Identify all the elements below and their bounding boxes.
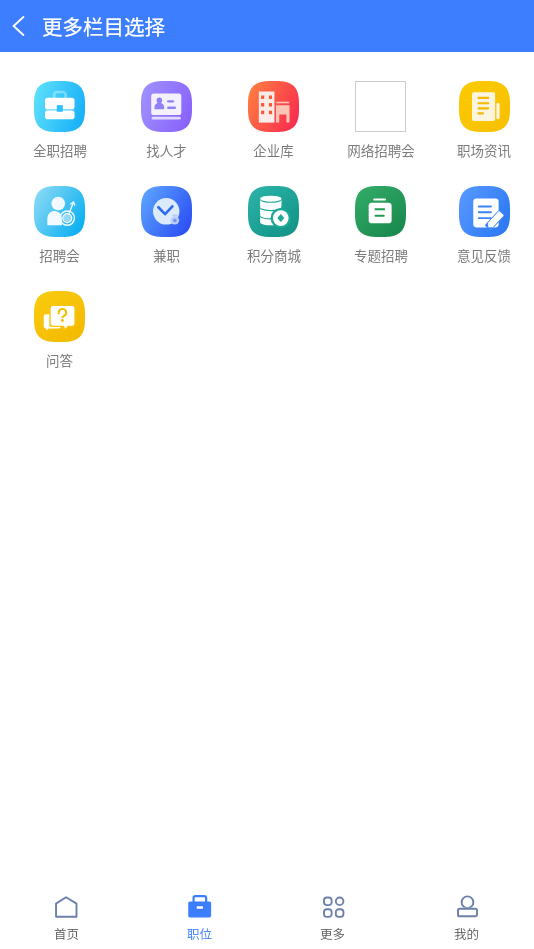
button[interactable]: 职场资讯 [434, 81, 534, 186]
button[interactable]: 网络招聘会 [327, 81, 434, 186]
staticText: 问答 [46, 350, 73, 370]
button[interactable]: 全职招聘 [6, 81, 113, 186]
staticText: 我的 [454, 924, 480, 942]
staticText: 职位 [187, 924, 213, 942]
staticText: 积分商城 [247, 245, 301, 265]
button[interactable]: Back [0, 0, 534, 52]
button[interactable]: 首页 [0, 888, 133, 949]
staticText: 兼职 [153, 245, 180, 265]
button[interactable]: 招聘会 [6, 186, 113, 291]
button[interactable]: 兼职 [113, 186, 220, 291]
staticText: 更多 [320, 924, 346, 942]
button[interactable]: 我的 [400, 888, 534, 949]
button[interactable]: 积分商城 [220, 186, 327, 291]
staticText: 更多栏目选择 [42, 11, 165, 41]
button[interactable]: 企业库 [220, 81, 327, 186]
staticText: 首页 [54, 924, 80, 942]
staticText: 职场资讯 [457, 140, 511, 160]
staticText: 全职招聘 [33, 140, 87, 160]
button[interactable]: 职位 [133, 888, 266, 949]
button[interactable]: 找人才 [113, 81, 220, 186]
staticText: 企业库 [253, 140, 294, 160]
staticText: 意见反馈 [457, 245, 511, 265]
button[interactable]: 意见反馈 [434, 186, 534, 291]
button[interactable]: 问答 [6, 291, 113, 396]
button[interactable]: 专题招聘 [327, 186, 434, 291]
staticText: 专题招聘 [354, 245, 408, 265]
button[interactable]: 更多 [266, 888, 400, 949]
staticText: 找人才 [146, 140, 187, 160]
staticText: 网络招聘会 [347, 140, 415, 160]
staticText: 招聘会 [39, 245, 80, 265]
